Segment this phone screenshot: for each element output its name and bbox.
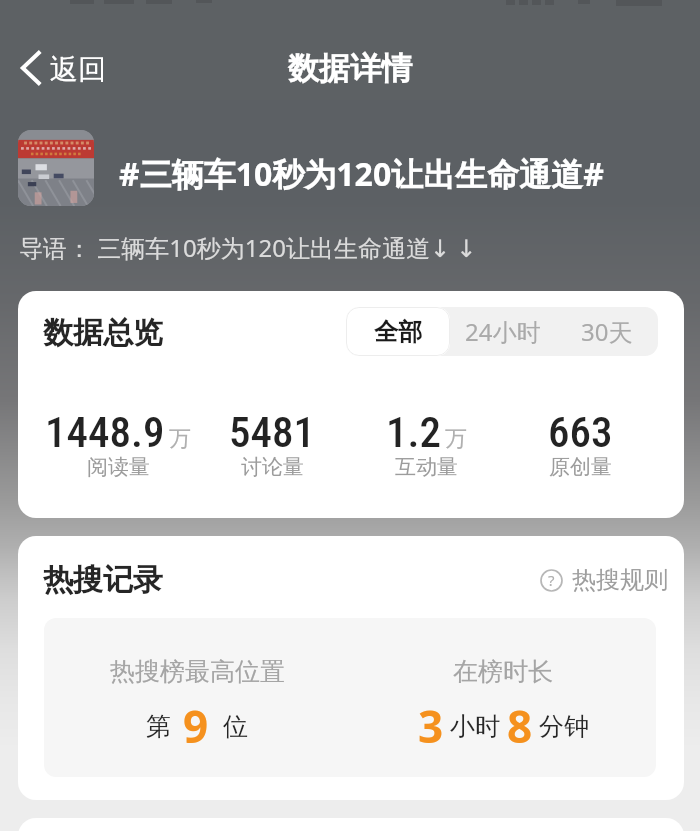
staticText: 返回 [50,52,106,87]
staticText: 分钟 [539,711,589,742]
staticText: 讨论量 [241,454,304,480]
staticText: 全部 [374,317,422,347]
button[interactable]: 24小时 [450,307,555,356]
staticText: ? [548,570,555,590]
staticText: 万 [445,425,467,453]
staticText: 互动量 [395,454,458,480]
staticText: 阅读量 [87,454,150,480]
other: Back [20,50,43,86]
staticText: 热搜规则 [572,565,668,595]
staticText: 第 [146,711,171,742]
staticText: 数据总览 [43,314,163,352]
button[interactable]: Back [0,42,120,94]
staticText: 9 [183,696,209,756]
button[interactable]: 30天 [555,307,658,356]
staticText: 原创量 [549,454,612,480]
staticText: 数据详情 [288,49,412,88]
staticText: 在榜时长 [453,656,553,687]
staticText: 导语： 三辆车10秒为120让出生命通道↓ ↓ [19,231,477,264]
staticText: 位 [223,711,248,742]
staticText: 1.2 [386,407,441,457]
staticText: 热搜榜最高位置 [110,656,285,687]
staticText: 30天 [581,315,633,348]
staticText: 热搜记录 [43,561,163,599]
staticText: 小时 [450,711,500,742]
button[interactable]: 全部 [346,307,450,356]
staticText: 24小时 [465,315,541,348]
staticText: 万 [169,425,191,453]
button[interactable]: #三辆车10秒为120让出生命通道# [0,128,700,208]
staticText: 5481 [229,407,315,457]
button[interactable]: ? [530,557,678,603]
staticText: 1448.9 [45,407,165,457]
staticText: 663 [548,407,613,457]
staticText: #三辆车10秒为120让出生命通道# [119,152,604,196]
staticText: 3 [418,696,444,756]
staticText: 8 [507,696,533,756]
